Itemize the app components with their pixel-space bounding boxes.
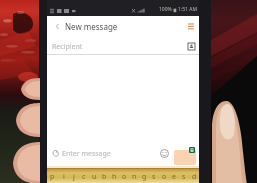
staticText: j bbox=[73, 172, 75, 182]
button[interactable] bbox=[179, 168, 189, 173]
button[interactable] bbox=[69, 168, 79, 173]
button[interactable]: s bbox=[179, 173, 189, 183]
staticText: c bbox=[82, 172, 86, 182]
button[interactable]: e bbox=[169, 173, 179, 183]
button[interactable] bbox=[169, 168, 179, 173]
button[interactable]: s bbox=[149, 173, 159, 183]
button[interactable]: Contacts bbox=[183, 38, 199, 55]
button[interactable]: n bbox=[129, 173, 139, 183]
button[interactable]: More options bbox=[183, 16, 199, 37]
staticText: s bbox=[182, 172, 186, 182]
staticText: n bbox=[132, 172, 137, 182]
button[interactable] bbox=[119, 168, 129, 173]
staticText: u bbox=[92, 172, 97, 182]
button[interactable]: j bbox=[69, 173, 79, 183]
staticText: o bbox=[122, 172, 127, 182]
staticText: Recipient bbox=[52, 42, 83, 52]
button[interactable]: u bbox=[89, 173, 99, 183]
button[interactable]: Emoji bbox=[159, 148, 170, 159]
button[interactable] bbox=[47, 168, 58, 173]
button[interactable] bbox=[159, 168, 169, 173]
button[interactable]: l bbox=[58, 173, 69, 183]
button[interactable] bbox=[58, 168, 69, 173]
button[interactable] bbox=[89, 168, 99, 173]
staticText: s bbox=[152, 172, 156, 182]
staticText: b bbox=[102, 172, 107, 182]
button[interactable]: b bbox=[99, 173, 109, 183]
button[interactable]: g bbox=[139, 173, 149, 183]
staticText: l bbox=[63, 172, 65, 182]
staticText: o bbox=[162, 172, 167, 182]
button[interactable]: Attach bbox=[49, 147, 62, 160]
button[interactable]: Back bbox=[49, 16, 65, 37]
button[interactable] bbox=[109, 168, 119, 173]
button[interactable]: h bbox=[109, 173, 119, 183]
button[interactable] bbox=[99, 168, 109, 173]
button[interactable] bbox=[47, 37, 199, 54]
button[interactable]: Send bbox=[174, 150, 196, 165]
button[interactable]: c bbox=[79, 173, 89, 183]
button[interactable] bbox=[129, 168, 139, 173]
button[interactable]: d bbox=[189, 173, 199, 183]
staticText: New message bbox=[65, 21, 118, 32]
button[interactable]: p bbox=[47, 173, 58, 183]
button[interactable]: o bbox=[119, 173, 129, 183]
button[interactable] bbox=[139, 168, 149, 173]
staticText: g bbox=[142, 172, 147, 182]
staticText: e bbox=[172, 172, 176, 182]
button[interactable] bbox=[149, 168, 159, 173]
button[interactable] bbox=[189, 168, 199, 173]
staticText: Enter message bbox=[62, 149, 111, 159]
staticText: p bbox=[50, 172, 55, 182]
staticText: h bbox=[112, 172, 117, 182]
staticText: 100% bbox=[159, 6, 172, 13]
button[interactable]: o bbox=[159, 173, 169, 183]
staticText: d bbox=[192, 172, 197, 182]
staticText: 1:51 AM bbox=[178, 6, 197, 13]
button[interactable] bbox=[79, 168, 89, 173]
